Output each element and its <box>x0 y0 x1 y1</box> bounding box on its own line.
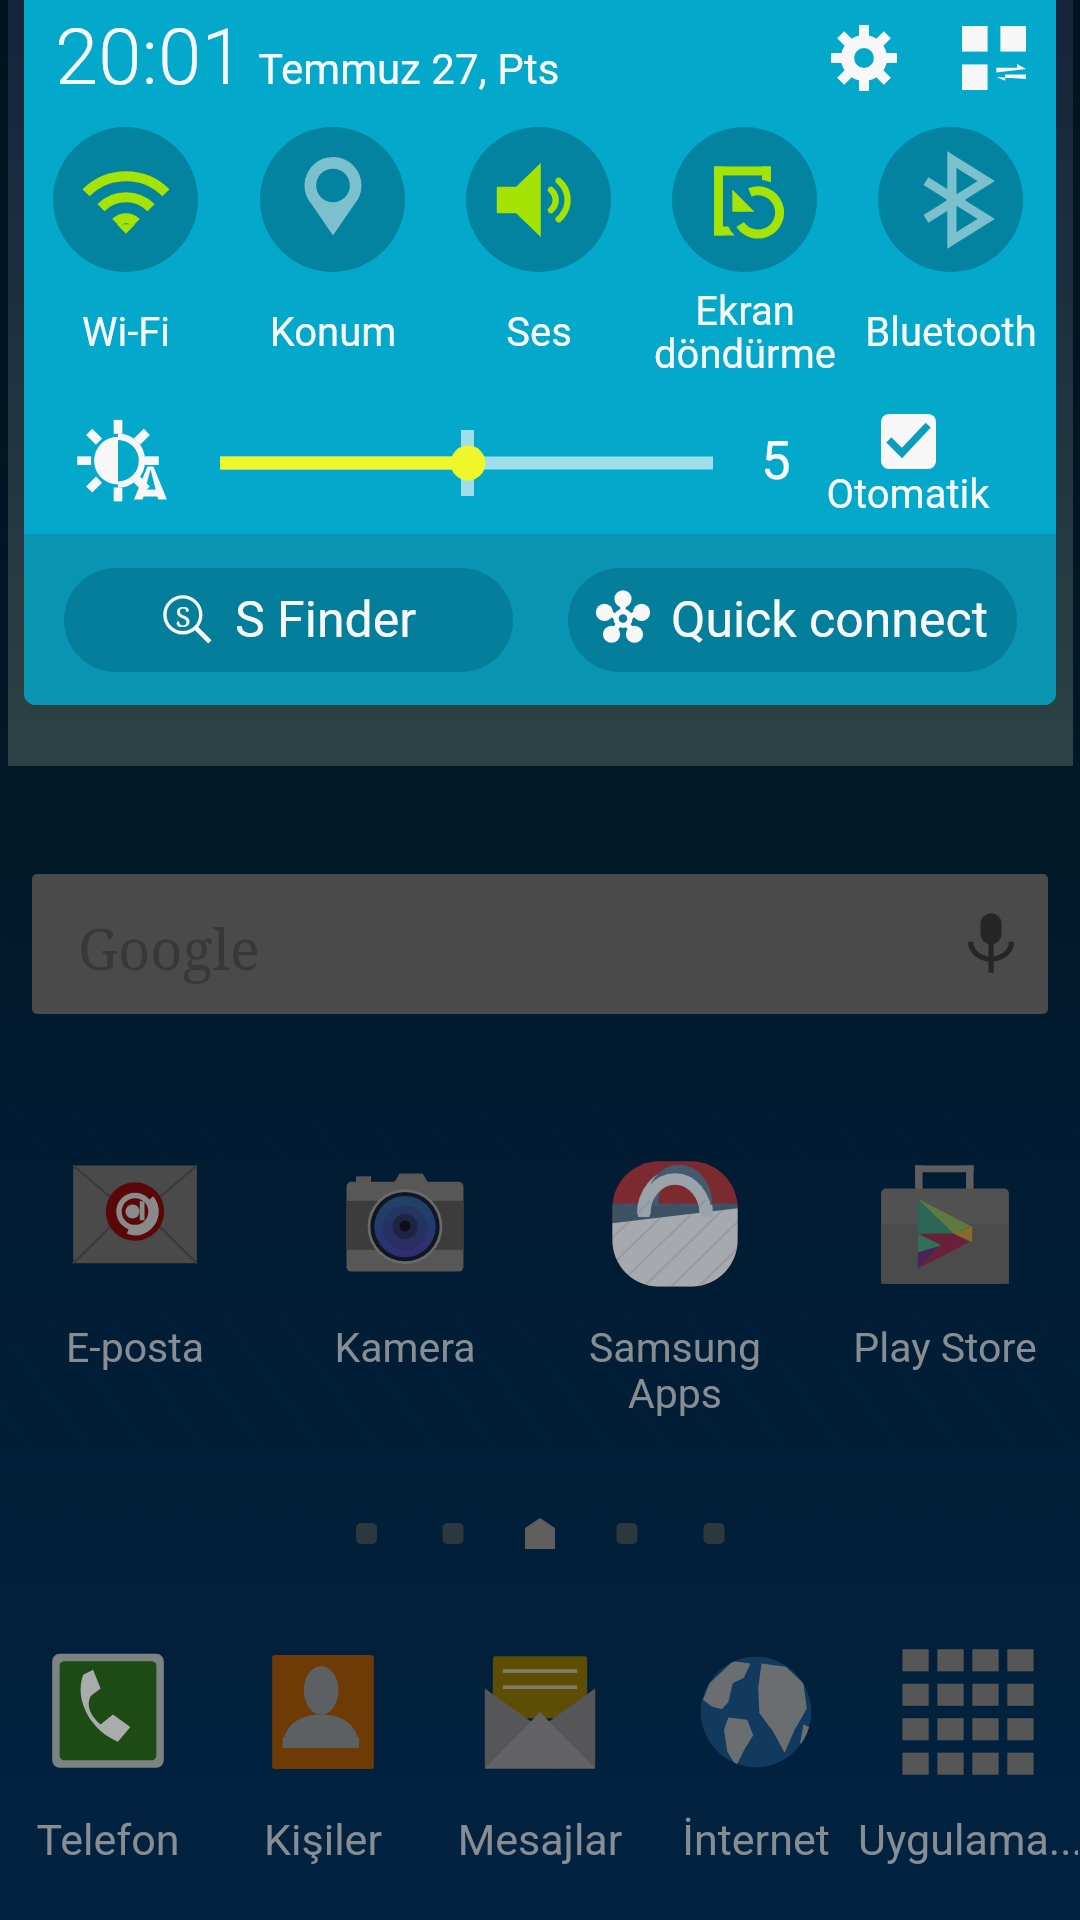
button[interactable]: Samsung Apps <box>550 1160 800 1430</box>
button[interactable]: Settings <box>816 10 912 106</box>
staticText: Wi-Fi <box>24 309 231 356</box>
staticText: Telefon <box>0 1815 218 1865</box>
staticText: E-posta <box>10 1324 260 1372</box>
button[interactable]: Telefon <box>0 1645 218 1895</box>
button[interactable]: Mesajlar <box>430 1645 650 1895</box>
button[interactable]: S <box>64 568 513 672</box>
button[interactable]: Quick connect <box>568 568 1017 672</box>
button[interactable]: Wi-Fi <box>24 113 231 383</box>
button[interactable]: Otomatik <box>813 414 1003 518</box>
button[interactable]: Konum <box>228 113 438 383</box>
button[interactable]: Ses <box>434 113 644 383</box>
button[interactable]: E-posta <box>10 1160 260 1430</box>
staticText: Konum <box>228 309 438 356</box>
staticText: Google <box>78 910 261 986</box>
button[interactable]: Uygulama... <box>858 1645 1078 1895</box>
staticText: Bluetooth <box>846 309 1056 356</box>
staticText: 5 <box>761 430 791 492</box>
staticText: Temmuz 27, Pts <box>258 45 560 94</box>
staticText: Ekran döndürme <box>640 288 850 378</box>
staticText: Mesajlar <box>430 1815 650 1865</box>
staticText: Quick connect <box>671 591 988 650</box>
button[interactable]: Play Store <box>820 1160 1070 1430</box>
staticText: Kamera <box>280 1324 530 1372</box>
button[interactable]: Brightness <box>202 403 730 534</box>
button[interactable]: Ekran döndürme <box>640 113 850 383</box>
staticText: S Finder <box>235 591 417 650</box>
staticText: Ses <box>434 309 644 356</box>
staticText: Kişiler <box>213 1815 433 1865</box>
staticText: İnternet <box>646 1815 866 1865</box>
staticText: 20:01 <box>55 12 245 103</box>
button[interactable]: Kişiler <box>213 1645 433 1895</box>
staticText: Otomatik <box>813 471 1003 518</box>
staticText: Samsung Apps <box>550 1324 800 1418</box>
staticText: Uygulama... <box>858 1815 1078 1865</box>
button[interactable]: Google <box>32 874 1048 1014</box>
staticText: S <box>175 597 191 635</box>
button[interactable]: Bluetooth <box>846 113 1056 383</box>
button[interactable]: Kamera <box>280 1160 530 1430</box>
button[interactable]: İnternet <box>646 1645 866 1895</box>
button[interactable]: Edit quick settings <box>948 12 1040 104</box>
staticText: Play Store <box>820 1324 1070 1372</box>
